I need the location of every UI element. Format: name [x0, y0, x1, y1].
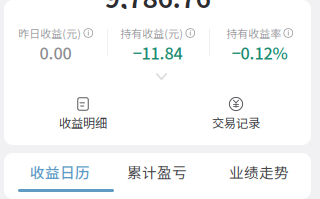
- button[interactable]: 业绩走势: [208, 153, 310, 199]
- staticText: 昨日收益(元): [18, 25, 81, 41]
- staticText: 业绩走势: [229, 161, 289, 182]
- staticText: −0.12%: [231, 41, 287, 64]
- button[interactable]: 收益日历: [4, 153, 116, 199]
- staticText: 收益日历: [30, 161, 90, 182]
- staticText: 收益明细: [59, 114, 107, 131]
- staticText: 持有收益(元): [120, 25, 183, 41]
- staticText: −11.84: [132, 41, 182, 64]
- staticText: 持有收益率: [226, 25, 281, 41]
- staticText: 9,786.76: [104, 0, 210, 16]
- button[interactable]: 累计盈亏: [106, 153, 208, 199]
- staticText: 交易记录: [212, 114, 260, 131]
- staticText: 累计盈亏: [127, 161, 187, 182]
- button[interactable]: 交易记录: [176, 97, 296, 129]
- button[interactable]: 收益明细: [23, 97, 143, 129]
- staticText: 0.00: [39, 41, 71, 64]
